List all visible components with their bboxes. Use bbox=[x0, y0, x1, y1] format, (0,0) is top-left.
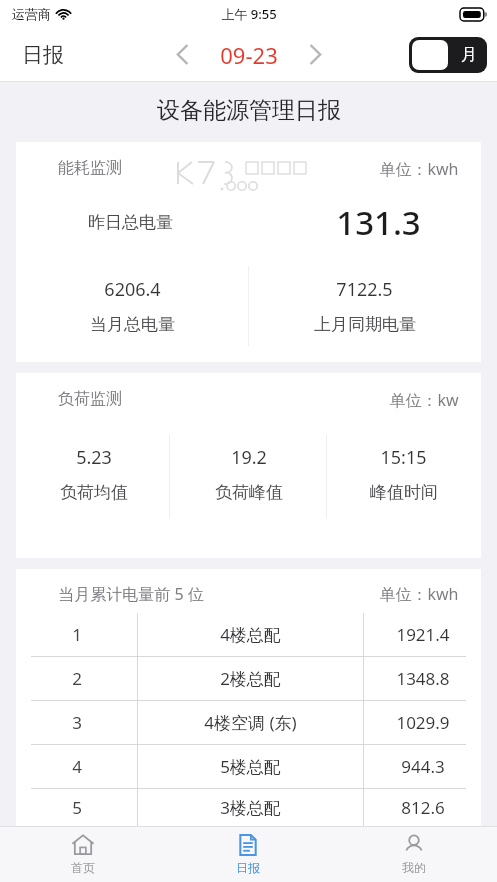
button[interactable]: Next day bbox=[302, 37, 329, 72]
staticText: 昨日总电量 bbox=[88, 212, 173, 233]
staticText: 2 bbox=[72, 667, 82, 690]
staticText: 5楼总配 bbox=[220, 755, 281, 778]
staticText: 5.23 bbox=[76, 445, 112, 470]
button[interactable]: 能耗监测 bbox=[16, 142, 481, 362]
staticText: 日报 bbox=[236, 860, 260, 875]
button[interactable]: 15:15 bbox=[326, 445, 481, 503]
staticText: 月 bbox=[461, 45, 477, 65]
staticText: 上月同期电量 bbox=[314, 314, 416, 335]
button[interactable]: 首页 bbox=[0, 827, 165, 882]
staticText: 负荷监测 bbox=[58, 389, 122, 409]
button[interactable]: 3 bbox=[16, 701, 481, 744]
staticText: 1348.8 bbox=[396, 667, 450, 690]
staticText: 4楼空调 (东) bbox=[204, 711, 297, 734]
staticText: 4楼总配 bbox=[220, 623, 281, 646]
button[interactable]: Previous day bbox=[169, 37, 196, 72]
staticText: 首页 bbox=[71, 860, 95, 875]
staticText: 负荷峰值 bbox=[215, 482, 283, 503]
staticText: 单位：kwh bbox=[379, 158, 459, 180]
staticText: 1029.9 bbox=[396, 711, 450, 734]
button[interactable]: 7122.5 bbox=[248, 277, 481, 335]
staticText: 5 bbox=[72, 796, 82, 819]
button[interactable]: 19.2 bbox=[171, 445, 326, 503]
staticText: 当月总电量 bbox=[90, 314, 175, 335]
staticText: 09-23 bbox=[220, 40, 278, 70]
staticText: 单位：kwh bbox=[379, 583, 459, 605]
staticText: 3 bbox=[72, 711, 82, 734]
button[interactable]: 我的 bbox=[331, 827, 497, 882]
button[interactable]: 月 bbox=[409, 37, 487, 73]
staticText: 15:15 bbox=[380, 445, 427, 470]
button[interactable]: 6206.4 bbox=[16, 277, 248, 335]
button[interactable]: 5.23 bbox=[16, 445, 171, 503]
button[interactable]: 09-23 bbox=[218, 40, 280, 70]
staticText: 日报 bbox=[22, 42, 64, 68]
staticText: 当月累计电量前 5 位 bbox=[58, 583, 204, 605]
button[interactable]: 负荷监测 bbox=[16, 373, 481, 558]
staticText: 3楼总配 bbox=[220, 796, 281, 819]
staticText: 负荷均值 bbox=[60, 482, 128, 503]
button[interactable]: 5 bbox=[16, 789, 481, 826]
staticText: 4 bbox=[72, 755, 82, 778]
button[interactable]: 2 bbox=[16, 657, 481, 700]
staticText: 我的 bbox=[402, 860, 426, 875]
staticText: 6206.4 bbox=[104, 277, 161, 302]
staticText: 812.6 bbox=[401, 796, 445, 819]
staticText: 单位：kw bbox=[389, 389, 459, 411]
staticText: 7122.5 bbox=[336, 277, 393, 302]
staticText: 2楼总配 bbox=[220, 667, 281, 690]
staticText: 峰值时间 bbox=[370, 482, 438, 503]
staticText: 131.3 bbox=[336, 200, 421, 245]
button[interactable]: 1 bbox=[16, 613, 481, 656]
staticText: 944.3 bbox=[401, 755, 445, 778]
button[interactable]: 4 bbox=[16, 745, 481, 788]
staticText: 1 bbox=[72, 623, 82, 646]
staticText: 上午 9:55 bbox=[221, 5, 277, 23]
staticText: 1921.4 bbox=[396, 623, 450, 646]
staticText: 能耗监测 bbox=[58, 158, 122, 178]
staticText: 运营商 bbox=[12, 6, 51, 22]
button[interactable]: 日报 bbox=[165, 827, 331, 882]
staticText: 设备能源管理日报 bbox=[157, 96, 341, 125]
button[interactable]: 日报 bbox=[18, 36, 68, 74]
staticText: 19.2 bbox=[231, 445, 267, 470]
